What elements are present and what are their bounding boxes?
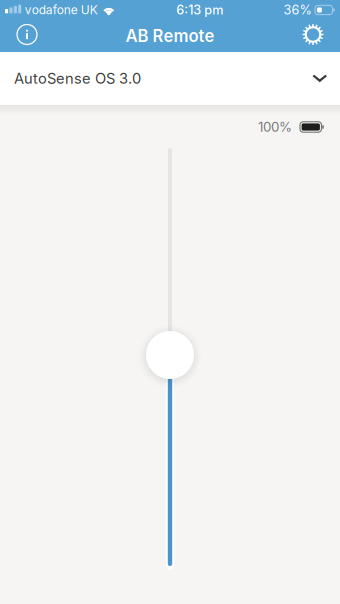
staticText: AB Remote [125,26,214,46]
staticText: 100% [258,119,292,135]
staticText: 6:13 pm [176,2,223,18]
staticText: vodafone UK [25,3,98,17]
staticText: AutoSense OS 3.0 [14,70,141,87]
staticText: 36% [283,2,311,18]
button[interactable]: Information [5,20,49,52]
button[interactable]: Volume [146,331,194,379]
button[interactable]: Settings [291,20,335,52]
button[interactable]: AutoSense OS 3.0 [0,52,340,105]
